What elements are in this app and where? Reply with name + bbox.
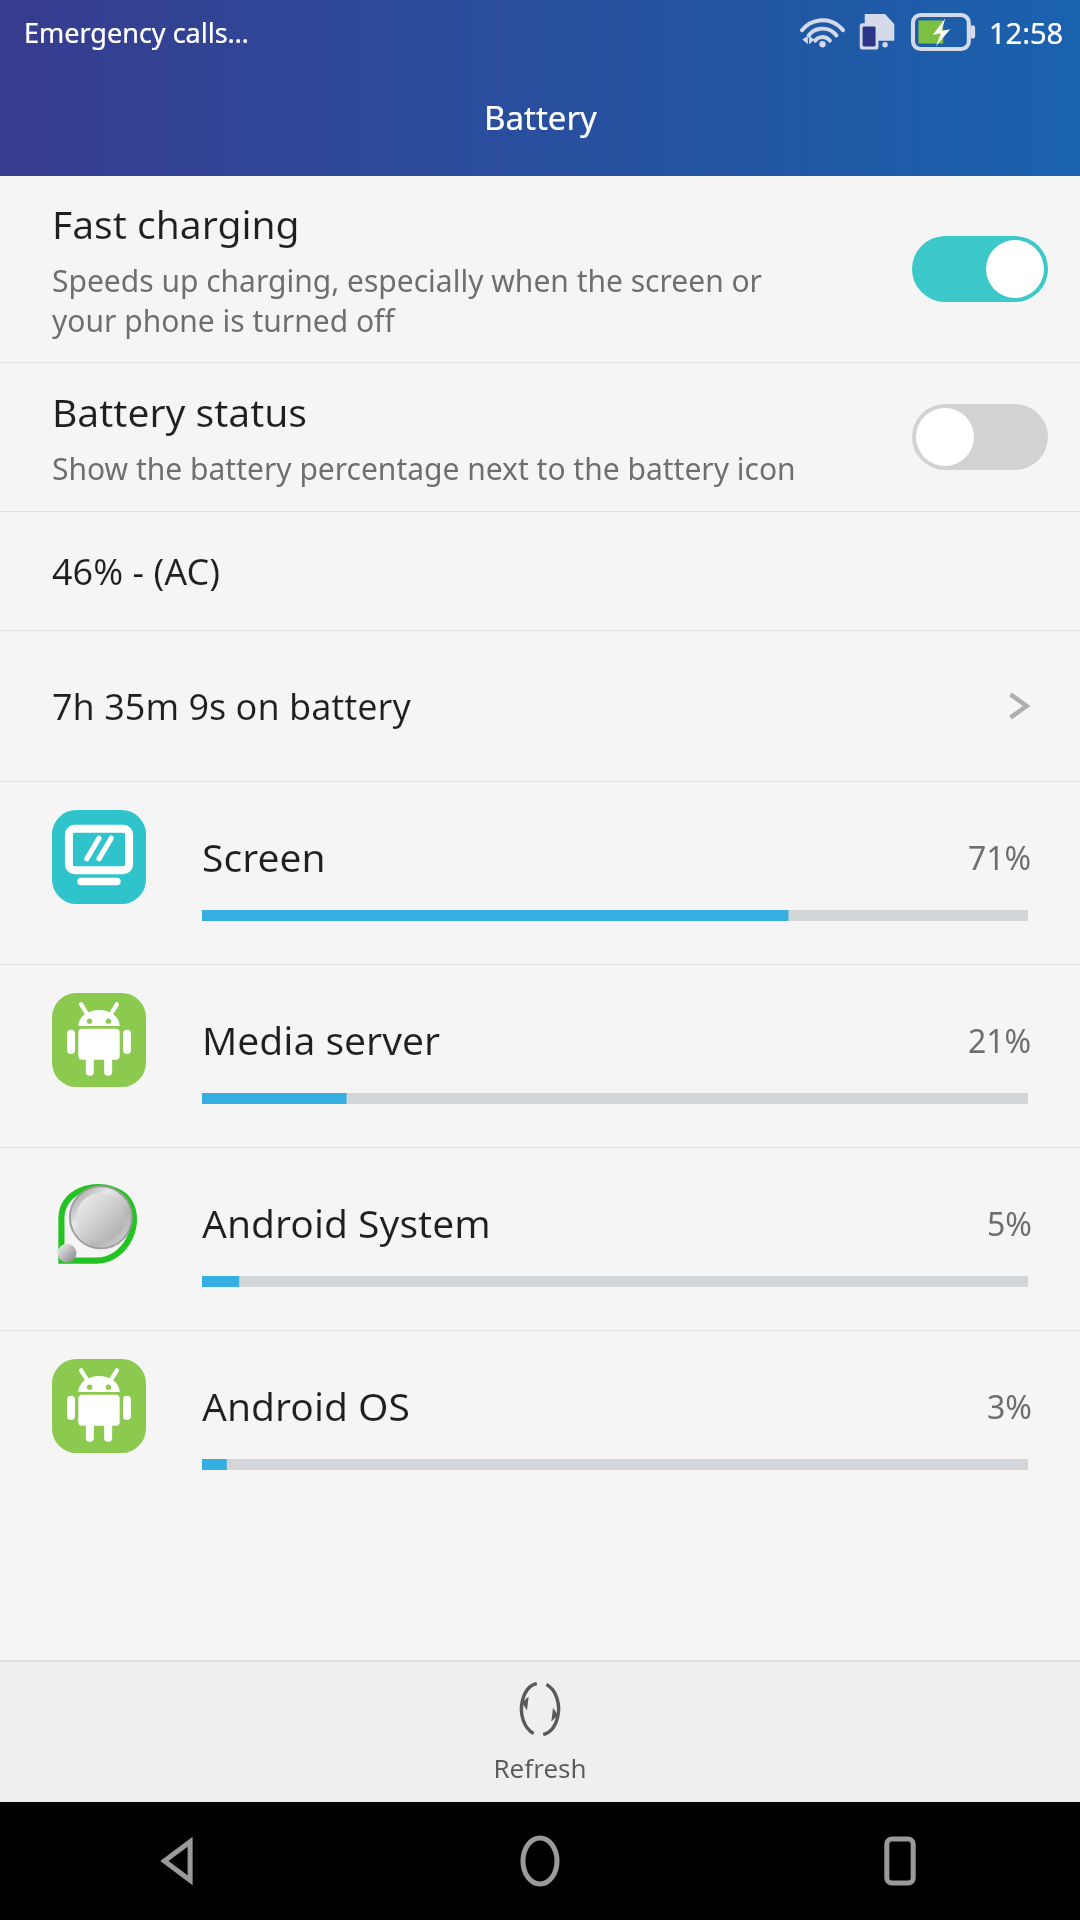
button[interactable]: Media server <box>0 965 1080 1147</box>
staticText: 7h 35m 9s on battery <box>52 682 411 731</box>
button[interactable]: Android OS <box>0 1331 1080 1513</box>
button[interactable]: Screen <box>0 782 1080 964</box>
staticText: Android System <box>202 1196 491 1249</box>
staticText: Battery status <box>52 385 308 438</box>
button[interactable]: 7h 35m 9s on battery <box>0 631 1080 781</box>
staticText: 12:58 <box>989 13 1064 52</box>
staticText: Refresh <box>493 1750 587 1785</box>
staticText: Battery <box>484 95 597 140</box>
staticText: 46% - (AC) <box>52 547 221 596</box>
staticText: Show the battery percentage next to the … <box>52 448 796 489</box>
button[interactable]: Back <box>132 1813 228 1909</box>
staticText: Speeds up charging, especially when the … <box>52 260 763 341</box>
button[interactable]: 46% - (AC) <box>0 512 1080 630</box>
staticText: 21% <box>968 1019 1032 1063</box>
button[interactable] <box>912 236 1048 302</box>
staticText: 5% <box>987 1202 1032 1246</box>
button[interactable]: Fast charging <box>0 176 1080 362</box>
staticText: 3% <box>987 1385 1032 1429</box>
staticText: Android OS <box>202 1379 410 1432</box>
staticText: Fast charging <box>52 197 300 250</box>
button[interactable]: Recents <box>852 1813 948 1909</box>
button[interactable] <box>912 404 1048 470</box>
staticText: Media server <box>202 1013 441 1066</box>
button[interactable]: Refresh <box>453 1670 627 1793</box>
staticText: Emergency calls… <box>24 14 249 51</box>
button[interactable]: Android System <box>0 1148 1080 1330</box>
staticText: Screen <box>202 830 326 883</box>
button[interactable]: Battery status <box>0 363 1080 511</box>
button[interactable]: Home <box>492 1813 588 1909</box>
staticText: 71% <box>968 836 1032 880</box>
